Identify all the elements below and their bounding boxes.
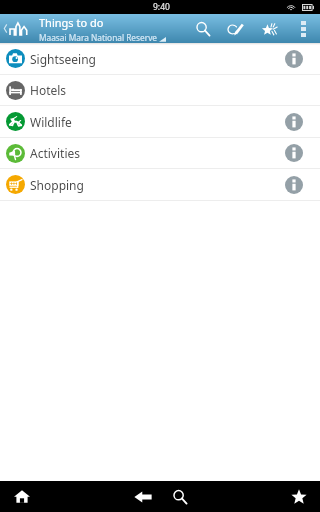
button[interactable]: Saves [253,14,286,43]
staticText: Sightseeing [30,51,96,67]
staticText: Shopping [30,177,84,193]
staticText: Wildlife [30,114,72,130]
button[interactable]: More options [286,14,320,43]
button[interactable]: Activities [0,138,320,168]
staticText: Things to do [39,15,104,30]
staticText: Hotels [30,82,67,98]
staticText: Activities [30,145,80,161]
button[interactable]: Write a review [219,14,253,43]
button[interactable]: Search [186,14,219,43]
staticText: Maasai Mara National Reserve [39,32,158,43]
button[interactable]: Sightseeing [0,43,320,74]
button[interactable]: Search [165,482,194,511]
button[interactable]: Hotels [0,75,320,105]
button[interactable]: Navigate up [0,14,186,43]
button[interactable]: Back [128,482,157,511]
button[interactable]: Favorites [284,482,313,511]
other: Navigate up [4,24,7,33]
button[interactable]: Shopping [0,169,320,200]
button[interactable]: Wildlife [0,106,320,137]
button[interactable]: Home [7,482,36,511]
staticText: 9:40 [153,1,170,13]
